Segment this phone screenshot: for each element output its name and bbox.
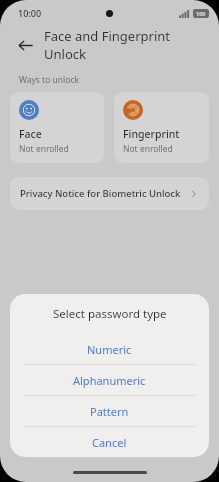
button[interactable]: Cancel	[10, 427, 209, 457]
staticText: Select password type	[53, 306, 167, 322]
button[interactable]: Pattern	[10, 396, 209, 426]
staticText: 100	[196, 10, 206, 17]
staticText: Privacy Notice for Biometric Unlock	[20, 187, 189, 200]
button[interactable]: Numeric	[10, 334, 209, 364]
staticText: Face and Fingerprint Unlock	[44, 27, 209, 63]
staticText: Not enrolled	[19, 143, 69, 155]
button[interactable]: Privacy Notice for Biometric Unlock	[10, 177, 209, 210]
button[interactable]: Face	[10, 92, 104, 163]
staticText: Not enrolled	[123, 143, 173, 155]
staticText: Ways to unlock	[19, 74, 80, 86]
staticText: Face	[19, 127, 42, 141]
button[interactable]: Fingerprint	[114, 92, 209, 163]
staticText: Cancel	[92, 435, 127, 450]
staticText: Numeric	[87, 342, 132, 357]
staticText: Alphanumeric	[73, 373, 146, 388]
staticText: Fingerprint	[123, 127, 180, 141]
button[interactable]: Back	[10, 30, 40, 60]
staticText: 10:00	[18, 7, 42, 19]
button[interactable]: Alphanumeric	[10, 365, 209, 395]
staticText: Pattern	[90, 404, 129, 419]
